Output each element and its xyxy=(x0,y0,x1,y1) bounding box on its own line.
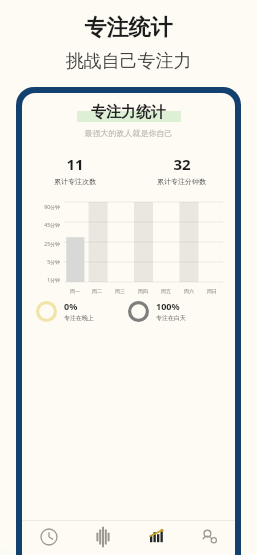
staticText: 90分钟 xyxy=(44,204,60,211)
button[interactable]: 统计 xyxy=(129,521,182,555)
button[interactable]: 白噪音 xyxy=(76,521,129,555)
staticText: 32 xyxy=(173,154,191,174)
staticText: 5分钟 xyxy=(47,259,60,266)
staticText: 专注力统计 xyxy=(91,103,166,122)
staticText: 周一 xyxy=(70,288,80,294)
staticText: 专注在白天 xyxy=(156,314,186,322)
staticText: 周五 xyxy=(161,288,171,294)
staticText: 最强大的敌人就是你自己 xyxy=(22,128,235,138)
staticText: 0% xyxy=(64,300,78,312)
staticText: 25分钟 xyxy=(44,241,60,248)
staticText: 累计专注分钟数 xyxy=(157,177,206,186)
staticText: 专注在晚上 xyxy=(64,314,94,322)
staticText: 挑战自己专注力 xyxy=(0,50,257,73)
staticText: 1分钟 xyxy=(47,277,60,284)
button[interactable]: 我的 xyxy=(182,521,235,555)
staticText: 45分钟 xyxy=(44,222,60,229)
staticText: 周二 xyxy=(92,288,102,294)
button[interactable]: 计时 xyxy=(22,521,76,555)
staticText: 累计专注次数 xyxy=(54,177,96,186)
staticText: 专注统计 xyxy=(0,14,257,42)
staticText: 周四 xyxy=(138,288,148,294)
staticText: 11 xyxy=(66,154,84,174)
staticText: 周日 xyxy=(207,288,217,294)
staticText: 周六 xyxy=(184,288,194,294)
staticText: 100% xyxy=(156,300,180,312)
staticText: 周三 xyxy=(115,288,125,294)
